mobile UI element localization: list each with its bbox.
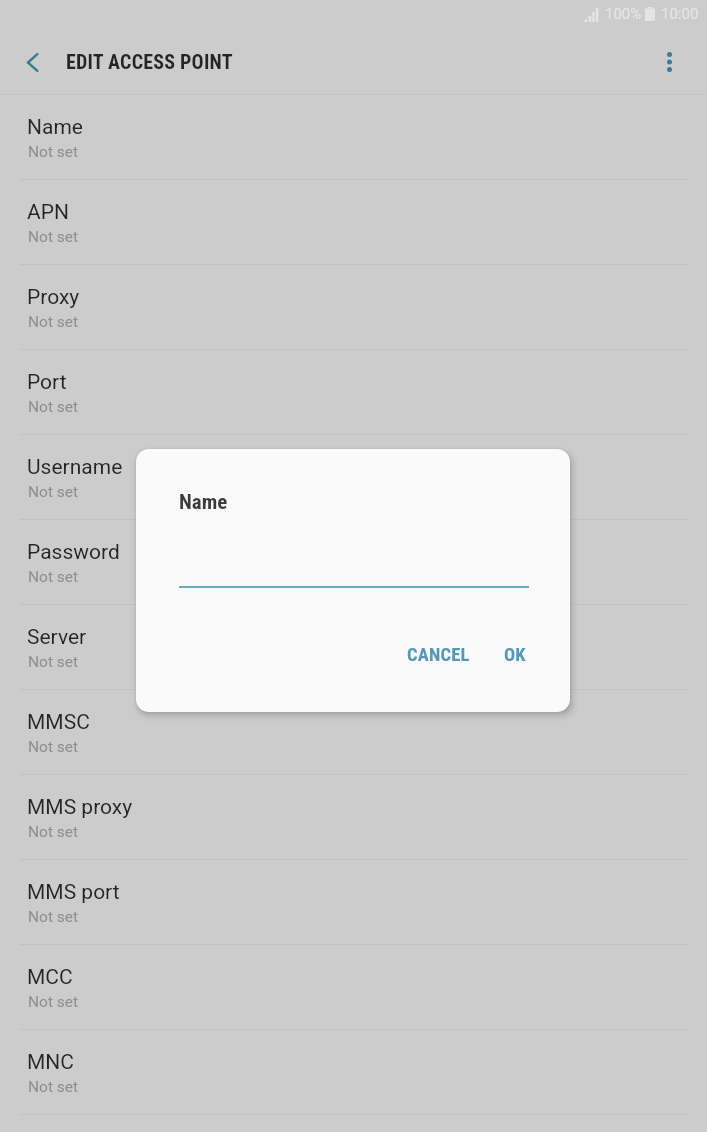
button[interactable]: Name xyxy=(0,95,707,180)
staticText: Password xyxy=(27,540,120,565)
staticText: MCC xyxy=(27,965,73,990)
staticText: Not set xyxy=(28,143,79,161)
button[interactable]: Port xyxy=(0,350,707,435)
button[interactable]: MMS proxy xyxy=(0,775,707,860)
button[interactable]: Username xyxy=(0,435,707,520)
staticText: Name xyxy=(27,115,83,140)
button[interactable]: More options xyxy=(645,32,707,94)
staticText: 100% xyxy=(605,5,642,23)
staticText: MMS proxy xyxy=(27,795,133,820)
staticText: CANCEL xyxy=(407,644,470,666)
staticText: Proxy xyxy=(27,285,80,310)
staticText: Not set xyxy=(28,228,79,246)
button[interactable]: Navigate up xyxy=(0,32,64,94)
staticText: Name xyxy=(179,490,228,515)
staticText: Not set xyxy=(28,1078,79,1096)
staticText: Not set xyxy=(28,398,79,416)
staticText: OK xyxy=(504,644,526,666)
button[interactable]: Proxy xyxy=(0,265,707,350)
button[interactable]: MMSC xyxy=(0,690,707,775)
staticText: Not set xyxy=(28,823,79,841)
staticText: Not set xyxy=(28,738,79,756)
staticText: MNC xyxy=(27,1050,74,1075)
staticText: Port xyxy=(27,370,67,395)
staticText: MMS port xyxy=(27,880,120,905)
staticText: Not set xyxy=(28,568,79,586)
staticText: Not set xyxy=(28,653,79,671)
staticText: EDIT ACCESS POINT xyxy=(66,50,233,73)
button[interactable]: MCC xyxy=(0,945,707,1030)
button[interactable]: CANCEL xyxy=(395,634,482,676)
staticText: APN xyxy=(27,200,69,225)
staticText: Not set xyxy=(28,993,79,1011)
staticText: Username xyxy=(27,455,123,480)
staticText: Not set xyxy=(28,908,79,926)
button[interactable]: MMS port xyxy=(0,860,707,945)
button[interactable]: APN xyxy=(0,180,707,265)
button[interactable]: OK xyxy=(492,634,538,676)
button[interactable]: Password xyxy=(0,520,707,605)
staticText: MMSC xyxy=(27,710,90,735)
button[interactable]: Server xyxy=(0,605,707,690)
staticText: Not set xyxy=(28,313,79,331)
staticText: 10:00 xyxy=(661,5,699,23)
staticText: Server xyxy=(27,625,87,650)
button[interactable]: MNC xyxy=(0,1030,707,1115)
staticText: Not set xyxy=(28,483,79,501)
